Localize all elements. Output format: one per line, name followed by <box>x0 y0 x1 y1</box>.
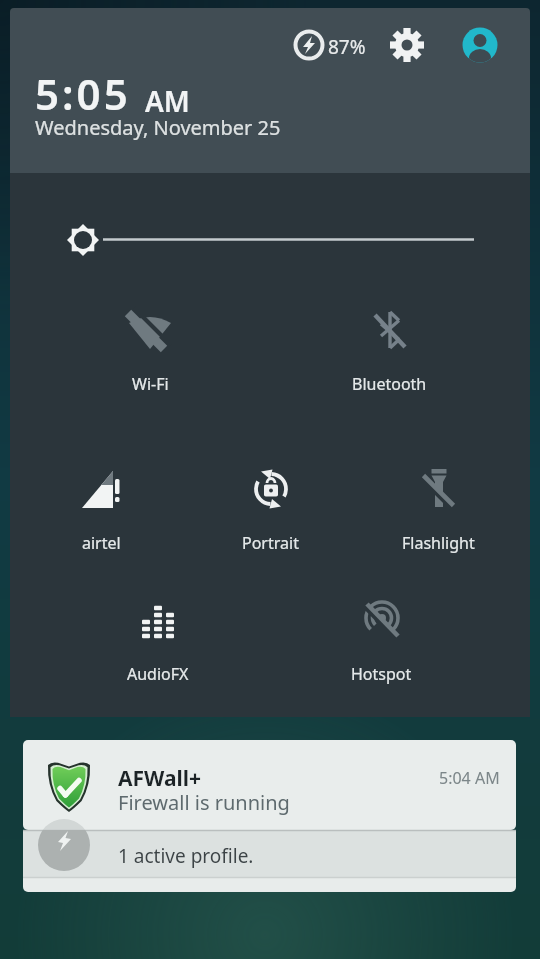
button[interactable] <box>388 26 426 64</box>
button[interactable] <box>60 217 106 263</box>
staticText: AM <box>145 82 190 120</box>
staticText: Wednesday, November 25 <box>35 114 281 141</box>
button[interactable] <box>461 26 499 64</box>
staticText: airtel <box>82 532 121 554</box>
staticText: Wi-Fi <box>132 373 169 395</box>
staticText: Firewall is running <box>118 789 290 816</box>
button[interactable]: AFWall+ <box>23 740 516 830</box>
button[interactable]: AudioFX <box>98 598 218 694</box>
staticText: AFWall+ <box>118 764 202 793</box>
button[interactable]: Flashlight <box>378 467 498 563</box>
staticText: 5:05 <box>35 65 131 122</box>
button[interactable]: Bluetooth <box>329 308 449 404</box>
staticText: Hotspot <box>351 663 412 685</box>
staticText: 87% <box>328 34 366 60</box>
staticText: AudioFX <box>127 663 189 685</box>
button[interactable]: Hotspot <box>321 598 441 694</box>
button[interactable]: Portrait <box>210 467 330 563</box>
button[interactable]: airtel <box>41 467 161 563</box>
staticText: Portrait <box>242 532 299 554</box>
staticText: 5:04 AM <box>439 767 500 789</box>
button[interactable]: 1 active profile. <box>23 830 516 892</box>
button[interactable]: Wi-Fi <box>90 308 210 404</box>
staticText: Bluetooth <box>352 373 427 395</box>
staticText: Flashlight <box>402 532 475 554</box>
staticText: 1 active profile. <box>118 843 254 869</box>
